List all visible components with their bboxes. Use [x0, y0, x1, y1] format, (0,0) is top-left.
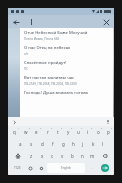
staticText: a [19, 141, 22, 147]
staticText: 1 [18, 127, 20, 130]
staticText: ПВ-2549, ПВ-2068, ПВ-2004, ПВ-3200 [24, 82, 77, 86]
button[interactable]: Emoji [25, 163, 36, 173]
staticText: English [61, 166, 72, 170]
staticText: ?123 [14, 166, 21, 170]
button[interactable]: d [37, 139, 48, 149]
staticText: 6 [71, 127, 73, 130]
button[interactable]: v [57, 151, 67, 161]
button[interactable]: Вот настал молитвы час [20, 73, 113, 88]
staticText: p [107, 129, 110, 135]
staticText: 9 [101, 127, 103, 130]
button[interactable]: r [42, 127, 53, 137]
staticText: i [87, 129, 89, 135]
button[interactable]: s [26, 139, 37, 149]
button[interactable]: f [48, 139, 58, 149]
staticText: x [41, 153, 44, 159]
staticText: w [24, 129, 28, 135]
staticText: l [102, 141, 104, 147]
button[interactable]: j [78, 139, 88, 149]
button[interactable]: l [98, 139, 108, 149]
staticText: t [57, 129, 59, 135]
staticText: 2 [29, 127, 31, 130]
button[interactable]: y [63, 127, 73, 137]
staticText: Песня Ияьва, Песня 666 [24, 37, 60, 41]
staticText: h [72, 141, 75, 147]
staticText: q [13, 129, 16, 135]
staticText: o [97, 129, 100, 135]
button[interactable]: Search [101, 164, 109, 172]
staticText: r [47, 129, 49, 135]
button[interactable]: i [83, 127, 93, 137]
staticText: n [81, 153, 84, 159]
staticText: . [91, 166, 92, 170]
staticText: f [52, 141, 54, 147]
staticText: g [62, 141, 65, 147]
button[interactable]: Господь! Душа внимать готова [20, 88, 113, 98]
button[interactable]: Open features [11, 119, 17, 125]
button[interactable]: Back [11, 17, 21, 27]
button[interactable]: English [47, 163, 85, 173]
button[interactable]: x [37, 151, 47, 161]
staticText: с/п [24, 52, 29, 56]
staticText: О нас Отец на небесах [24, 45, 71, 51]
staticText: 0 [111, 127, 113, 130]
staticText: v [61, 153, 64, 159]
button[interactable]: Спасённые пройдут! [20, 58, 113, 73]
staticText: s [30, 141, 33, 147]
staticText: j [82, 141, 84, 147]
button[interactable]: a [15, 139, 26, 149]
staticText: e [35, 129, 38, 135]
button[interactable]: Keyboard settings [36, 163, 46, 173]
staticText: 8 [91, 127, 93, 130]
staticText: Вот настал молитвы час [24, 75, 75, 81]
button[interactable]: q [9, 127, 20, 137]
button[interactable]: Close [101, 17, 111, 27]
button[interactable]: Backspace [97, 151, 113, 161]
staticText: ПС [24, 67, 29, 71]
staticText: b [71, 153, 74, 159]
staticText: u [77, 129, 80, 135]
button[interactable]: Shift [9, 151, 26, 161]
staticText: 4 [51, 127, 53, 130]
staticText: Господь! Душа внимать готова [24, 90, 88, 96]
button[interactable]: w [20, 127, 31, 137]
button[interactable]: Search field [29, 17, 34, 26]
button[interactable]: e [31, 127, 42, 137]
button[interactable]: o [93, 127, 103, 137]
button[interactable]: g [58, 139, 68, 149]
staticText: 7 [81, 127, 83, 130]
button[interactable]: z [26, 151, 37, 161]
staticText: y [67, 129, 70, 135]
staticText: 3 [40, 127, 42, 130]
button[interactable]: u [73, 127, 83, 137]
staticText: Отче Небесный Боже Могучий [24, 30, 88, 36]
button[interactable]: t [53, 127, 63, 137]
button[interactable]: h [68, 139, 78, 149]
staticText: m [90, 153, 95, 159]
button[interactable]: Voice input [105, 119, 111, 125]
staticText: d [41, 141, 44, 147]
staticText: k [92, 141, 95, 147]
staticText: Спасённые пройдут! [24, 60, 67, 66]
button[interactable]: b [67, 151, 77, 161]
button[interactable]: k [88, 139, 98, 149]
staticText: 5 [61, 127, 63, 130]
button[interactable]: p [103, 127, 113, 137]
staticText: z [30, 153, 33, 159]
staticText: c [51, 153, 54, 159]
button[interactable]: c [47, 151, 57, 161]
button[interactable]: m [87, 151, 97, 161]
button[interactable]: ?123 [9, 163, 25, 173]
button[interactable]: n [77, 151, 87, 161]
button[interactable]: О нас Отец на небесах [20, 43, 113, 58]
button[interactable]: Отче Небесный Боже Могучий [20, 28, 113, 43]
